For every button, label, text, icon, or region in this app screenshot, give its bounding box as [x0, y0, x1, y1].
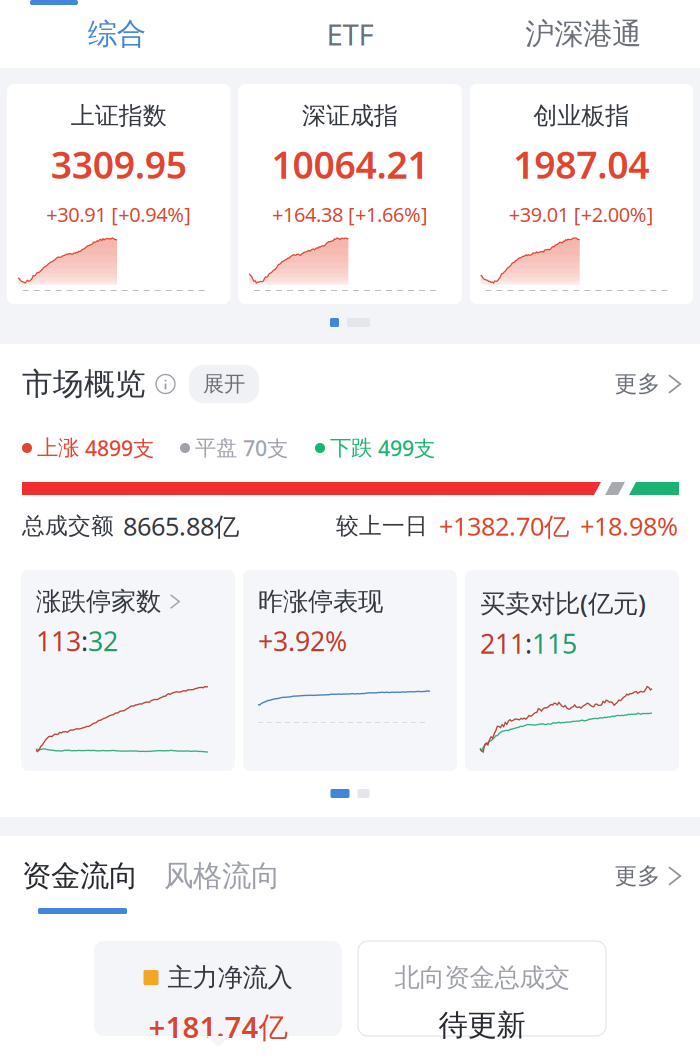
staticText: 北向资金总成交: [394, 962, 569, 993]
staticText: 113: [36, 623, 81, 658]
staticText: 买卖对比(亿元): [480, 586, 646, 620]
button[interactable]: 资金流向: [22, 858, 138, 894]
staticText: 10064.21: [271, 139, 428, 189]
button[interactable]: 综合: [0, 0, 233, 68]
staticText: 涨跌停家数: [36, 586, 161, 617]
staticText: +39.01 [+2.00%]: [509, 201, 654, 228]
staticText: 主力净流入: [167, 962, 292, 993]
staticText: 115: [532, 626, 577, 661]
staticText: 总成交额: [22, 512, 114, 540]
staticText: 较上一日: [336, 512, 428, 540]
staticText: 499支: [378, 434, 435, 462]
staticText: 更多: [615, 370, 661, 398]
staticText: 32: [88, 623, 118, 658]
button[interactable]: 更多: [615, 862, 682, 890]
button[interactable]: 深证成指: [238, 84, 462, 304]
button[interactable]: 更多: [615, 370, 682, 398]
staticText: +18.98%: [580, 509, 678, 543]
button[interactable]: 买卖对比(亿元): [465, 570, 679, 771]
button[interactable]: 创业板指: [470, 84, 693, 304]
staticText: 昨涨停表现: [258, 586, 383, 617]
button[interactable]: 昨涨停表现: [243, 570, 457, 771]
staticText: 8665.88亿: [123, 509, 239, 543]
staticText: +3.92%: [258, 623, 347, 658]
staticText: 资金流向: [22, 858, 138, 894]
button[interactable]: 涨跌停家数: [21, 570, 235, 771]
staticText: 4899支: [85, 434, 154, 462]
button[interactable]: ETF: [233, 0, 467, 68]
staticText: +164.38 [+1.66%]: [272, 201, 428, 228]
button[interactable]: 沪深港通: [467, 0, 700, 68]
staticText: 上证指数: [71, 101, 167, 130]
staticText: 3309.95: [51, 139, 187, 189]
staticText: 下跌: [330, 435, 372, 461]
button[interactable]: 主力净流入: [94, 941, 342, 1036]
staticText: 市场概览: [22, 365, 146, 403]
staticText: 更多: [615, 862, 661, 890]
button[interactable]: 风格流向: [164, 858, 280, 894]
staticText: 风格流向: [164, 858, 280, 894]
button[interactable]: 上证指数: [7, 84, 230, 304]
staticText: ETF: [326, 14, 373, 53]
staticText: 待更新: [438, 1007, 525, 1043]
staticText: 211: [480, 626, 525, 661]
staticText: 70支: [243, 434, 288, 462]
staticText: 创业板指: [533, 101, 629, 130]
staticText: 沪深港通: [525, 16, 641, 52]
staticText: 展开: [203, 371, 245, 397]
button[interactable]: 展开: [189, 365, 259, 403]
staticText: 综合: [88, 16, 146, 52]
staticText: 上涨: [37, 435, 79, 461]
staticText: +181.74亿: [148, 1007, 287, 1046]
staticText: 平盘: [195, 435, 237, 461]
staticText: +1382.70亿: [439, 509, 569, 543]
staticText: :: [525, 626, 532, 661]
staticText: 深证成指: [302, 101, 398, 130]
staticText: +30.91 [+0.94%]: [46, 201, 191, 228]
staticText: 1987.04: [513, 139, 649, 189]
button[interactable]: 北向资金总成交: [358, 941, 606, 1036]
staticText: :: [81, 623, 88, 658]
